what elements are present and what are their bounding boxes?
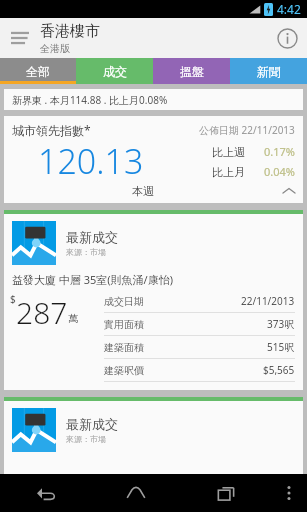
button[interactable]: 新聞 bbox=[230, 58, 307, 84]
staticText: 建築呎價 bbox=[104, 364, 144, 377]
staticText: 來源：市場 bbox=[66, 434, 106, 444]
staticText: 全部 bbox=[26, 64, 50, 79]
staticText: 新聞 bbox=[257, 64, 281, 79]
staticText: 香港樓市 bbox=[40, 22, 100, 41]
staticText: 22/11/2013 bbox=[241, 294, 295, 308]
button[interactable]: Home bbox=[91, 474, 181, 512]
staticText: 實用面積 bbox=[104, 318, 144, 331]
button[interactable]: 全部 bbox=[0, 58, 76, 84]
staticText: 成交 bbox=[103, 64, 127, 79]
staticText: 新界東 . 本月114.88 . 比上月0.08% bbox=[12, 93, 168, 107]
staticText: 515呎 bbox=[267, 340, 295, 354]
button[interactable]: Back bbox=[0, 474, 91, 512]
staticText: $ bbox=[10, 292, 16, 306]
button[interactable]: 城市領先指數* bbox=[4, 116, 303, 203]
button[interactable]: More options bbox=[271, 474, 307, 512]
staticText: 120.13 bbox=[38, 138, 144, 184]
staticText: 公佈日期 22/11/2013 bbox=[199, 123, 295, 137]
staticText: 287 bbox=[16, 292, 68, 333]
staticText: 比上週 bbox=[212, 145, 245, 159]
button[interactable]: Information bbox=[267, 18, 307, 58]
staticText: 萬 bbox=[68, 312, 78, 325]
staticText: 最新成交 bbox=[66, 229, 118, 245]
staticText: 建築面積 bbox=[104, 341, 144, 354]
staticText: 來源：市場 bbox=[66, 247, 106, 257]
staticText: 0.04% bbox=[264, 164, 295, 179]
staticText: 成交日期 bbox=[104, 295, 144, 308]
button[interactable]: Menu bbox=[0, 18, 40, 58]
staticText: 比上月 bbox=[212, 165, 245, 179]
staticText: 373呎 bbox=[267, 317, 295, 331]
staticText: 益發大廈 中層 35室(則魚涌/康怡) bbox=[12, 272, 173, 287]
button[interactable]: 新界東 . 本月114.88 . 比上月0.08% bbox=[4, 89, 303, 110]
staticText: 0.17% bbox=[264, 144, 295, 159]
button[interactable]: 最新成交 bbox=[4, 401, 303, 474]
staticText: 最新成交 bbox=[66, 416, 118, 432]
button[interactable]: Recent apps bbox=[181, 474, 271, 512]
staticText: $5,565 bbox=[263, 363, 295, 377]
button[interactable]: 成交 bbox=[76, 58, 153, 84]
button[interactable]: 最新成交 bbox=[4, 214, 303, 390]
staticText: 全港版 bbox=[40, 42, 70, 55]
staticText: 本週 bbox=[132, 184, 154, 198]
button[interactable]: 搵盤 bbox=[153, 58, 230, 84]
staticText: 城市領先指數* bbox=[12, 122, 91, 138]
staticText: 搵盤 bbox=[180, 64, 204, 79]
staticText: 4:42 bbox=[277, 1, 301, 17]
